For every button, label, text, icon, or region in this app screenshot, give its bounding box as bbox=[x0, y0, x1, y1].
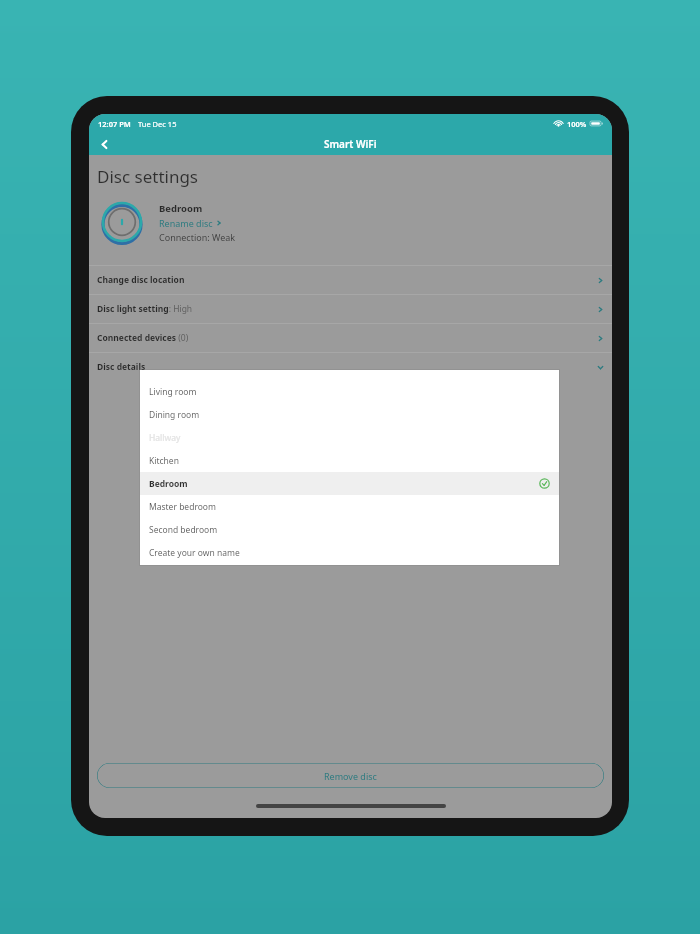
staticText: Dining room bbox=[149, 409, 200, 421]
staticText: Create your own name bbox=[149, 547, 240, 559]
button[interactable]: Bedroom bbox=[140, 472, 559, 495]
staticText: Change disc location bbox=[97, 274, 185, 286]
staticText: Remove disc bbox=[324, 770, 377, 782]
staticText: Bedroom bbox=[159, 202, 203, 215]
button[interactable]: Disc details bbox=[89, 353, 612, 381]
button[interactable]: Connected devices (0) bbox=[89, 324, 612, 352]
staticText: Hallway bbox=[149, 432, 181, 444]
staticText: Bedroom bbox=[149, 478, 188, 490]
staticText: Disc details bbox=[97, 361, 146, 373]
staticText: Tue Dec 15 bbox=[138, 119, 177, 129]
staticText: Disc settings bbox=[97, 165, 199, 188]
button[interactable]: Rename disc bbox=[159, 217, 222, 229]
staticText: Master bedroom bbox=[149, 501, 216, 513]
button[interactable]: Kitchen bbox=[140, 449, 559, 472]
staticText: Connection: Weak bbox=[159, 231, 236, 243]
button[interactable]: Dining room bbox=[140, 403, 559, 426]
staticText: Smart WiFi bbox=[324, 137, 377, 151]
staticText: Living room bbox=[149, 386, 197, 398]
staticText: 12:07 PM bbox=[98, 119, 131, 129]
button[interactable]: Disc light setting: High bbox=[89, 295, 612, 323]
button[interactable]: Master bedroom bbox=[140, 495, 559, 518]
staticText: Second bedroom bbox=[149, 524, 218, 536]
button[interactable]: Living room bbox=[140, 380, 559, 403]
staticText: 100% bbox=[567, 119, 587, 129]
staticText: Kitchen bbox=[149, 455, 179, 467]
button[interactable]: Remove disc bbox=[97, 763, 604, 788]
staticText: Disc light setting: High bbox=[97, 303, 193, 315]
staticText: Connected devices (0) bbox=[97, 332, 189, 344]
button[interactable]: Create your own name bbox=[140, 541, 559, 564]
button[interactable]: Second bedroom bbox=[140, 518, 559, 541]
button[interactable]: Change disc location bbox=[89, 266, 612, 294]
button[interactable]: Back bbox=[89, 133, 119, 155]
staticText: Rename disc bbox=[159, 217, 213, 229]
